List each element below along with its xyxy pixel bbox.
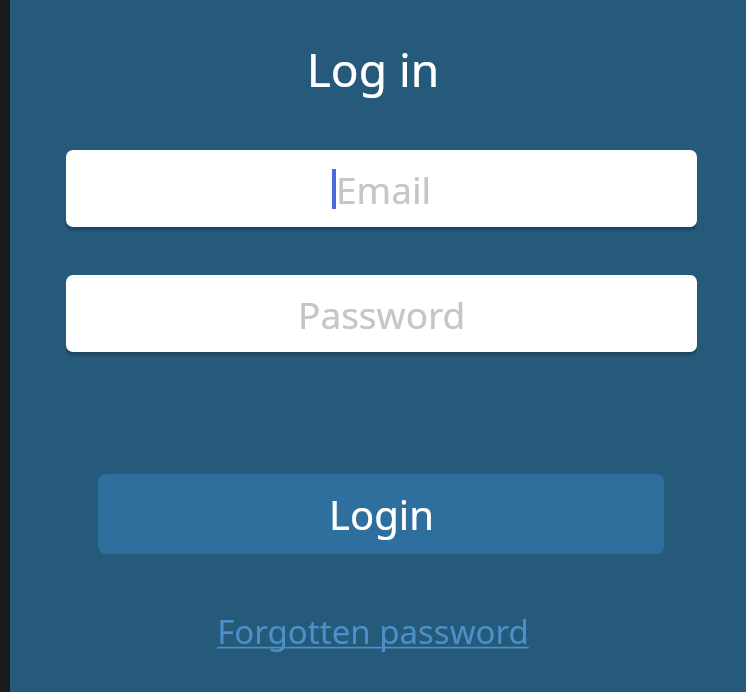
button[interactable]: Email input field: [66, 150, 697, 227]
staticText: Login: [329, 487, 434, 541]
staticText: Password: [298, 289, 466, 339]
button[interactable]: Forgotten password: [217, 609, 529, 654]
button[interactable]: Password input field: [66, 275, 697, 352]
button[interactable]: Login: [98, 474, 664, 554]
staticText: Forgotten password: [217, 609, 529, 654]
staticText: Email: [336, 164, 432, 214]
staticText: Log in: [0, 38, 746, 101]
